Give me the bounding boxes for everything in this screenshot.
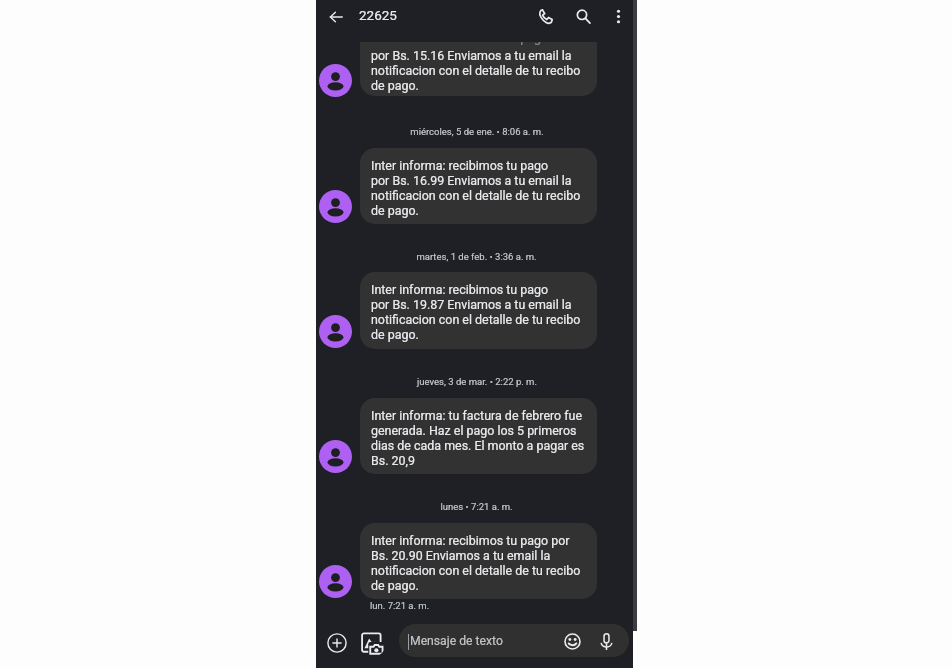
staticText: Bs. 20,9: [371, 453, 415, 468]
staticText: dias de cada mes. El monto a pagar es: [371, 438, 585, 453]
staticText: Inter informa: tu factura de febrero fue: [371, 408, 583, 423]
button[interactable]: Call: [532, 3, 559, 30]
staticText: notificacion con el detalle de tu recibo: [371, 63, 581, 78]
staticText: Inter informa: recibimos tu pago: [371, 42, 549, 45]
staticText: lunes • 7:21 a. m.: [440, 501, 513, 512]
staticText: notificacion con el detalle de tu recibo: [371, 312, 581, 327]
staticText: Inter informa: recibimos tu pago por: [371, 533, 570, 548]
staticText: de pago.: [371, 327, 419, 342]
button[interactable]: Gallery: [358, 629, 386, 657]
staticText: notificacion con el detalle de tu recibo: [371, 188, 581, 203]
button[interactable]: Voice message: [594, 629, 618, 653]
staticText: jueves, 3 de mar. • 2:22 p. m.: [417, 376, 537, 387]
staticText: notificacion con el detalle de tu recibo: [371, 563, 581, 578]
staticText: martes, 1 de feb. • 3:36 a. m.: [416, 251, 537, 262]
button[interactable]: Inter informa: recibimos tu pago: [360, 272, 597, 349]
button[interactable]: Search: [570, 3, 597, 30]
button[interactable]: Inter informa: recibimos tu pago: [360, 148, 597, 224]
button[interactable]: Add attachment: [323, 629, 351, 657]
staticText: Mensaje de texto: [410, 634, 503, 648]
staticText: Inter informa: recibimos tu pago: [371, 158, 549, 173]
button[interactable]: Mensaje de texto: [399, 624, 629, 657]
staticText: de pago.: [371, 578, 419, 593]
staticText: Bs. 20.90 Enviamos a tu email la: [371, 548, 551, 563]
staticText: de pago.: [371, 203, 419, 218]
button[interactable]: More options: [605, 3, 632, 30]
button[interactable]: Inter informa: recibimos tu pago por: [360, 523, 597, 599]
staticText: miércoles, 5 de ene. • 8:06 a. m.: [410, 126, 544, 137]
staticText: Inter informa: recibimos tu pago: [371, 282, 549, 297]
staticText: por Bs. 15.16 Enviamos a tu email la: [371, 48, 572, 63]
staticText: por Bs. 16.99 Enviamos a tu email la: [371, 173, 572, 188]
button[interactable]: Inter informa: recibimos tu pago: [360, 42, 597, 96]
staticText: generada. Haz el pago los 5 primeros: [371, 423, 577, 438]
button[interactable]: Back: [322, 3, 349, 30]
button[interactable]: Inter informa: tu factura de febrero fue: [360, 398, 597, 474]
staticText: 22625: [359, 7, 397, 23]
staticText: lun. 7:21 a. m.: [370, 600, 430, 611]
staticText: por Bs. 19.87 Enviamos a tu email la: [371, 297, 572, 312]
staticText: de pago.: [371, 78, 419, 93]
button[interactable]: Emoji: [560, 629, 584, 653]
